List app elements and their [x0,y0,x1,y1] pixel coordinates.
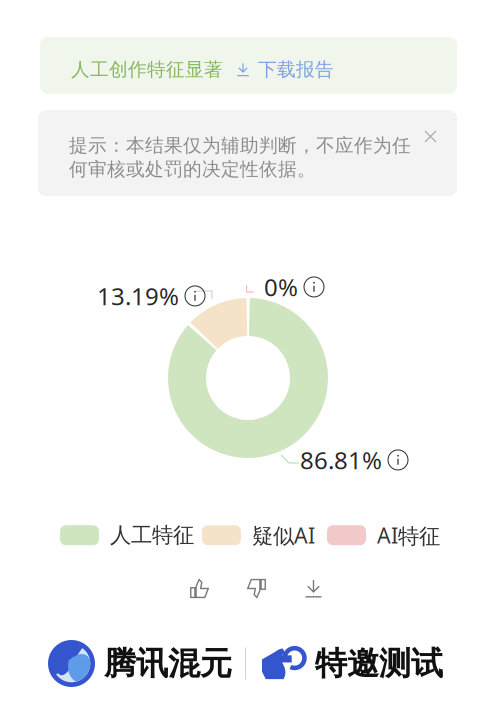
staticText: 特邀测试 [315,644,443,683]
button[interactable]: 点踩 [247,579,266,598]
button[interactable]: 下载 [304,579,323,598]
staticText: 人工创作特征显著 [71,58,223,81]
button[interactable]: 下载报告 [236,58,334,81]
staticText: 提示：本结果仅为辅助判断，不应作为任 [69,134,411,157]
staticText: 0% [264,271,298,303]
staticText: 86.81% [300,444,382,476]
button[interactable]: 关闭提示 [425,131,436,142]
staticText: 疑似AI [252,521,315,549]
staticText: 人工特征 [110,522,194,548]
staticText: AI特征 [377,521,440,549]
staticText: 腾讯混元 [104,644,232,683]
staticText: 何审核或处罚的决定性依据。 [69,158,316,181]
button[interactable]: 点赞 [190,579,209,598]
staticText: 13.19% [97,280,179,312]
staticText: 下载报告 [258,58,334,81]
